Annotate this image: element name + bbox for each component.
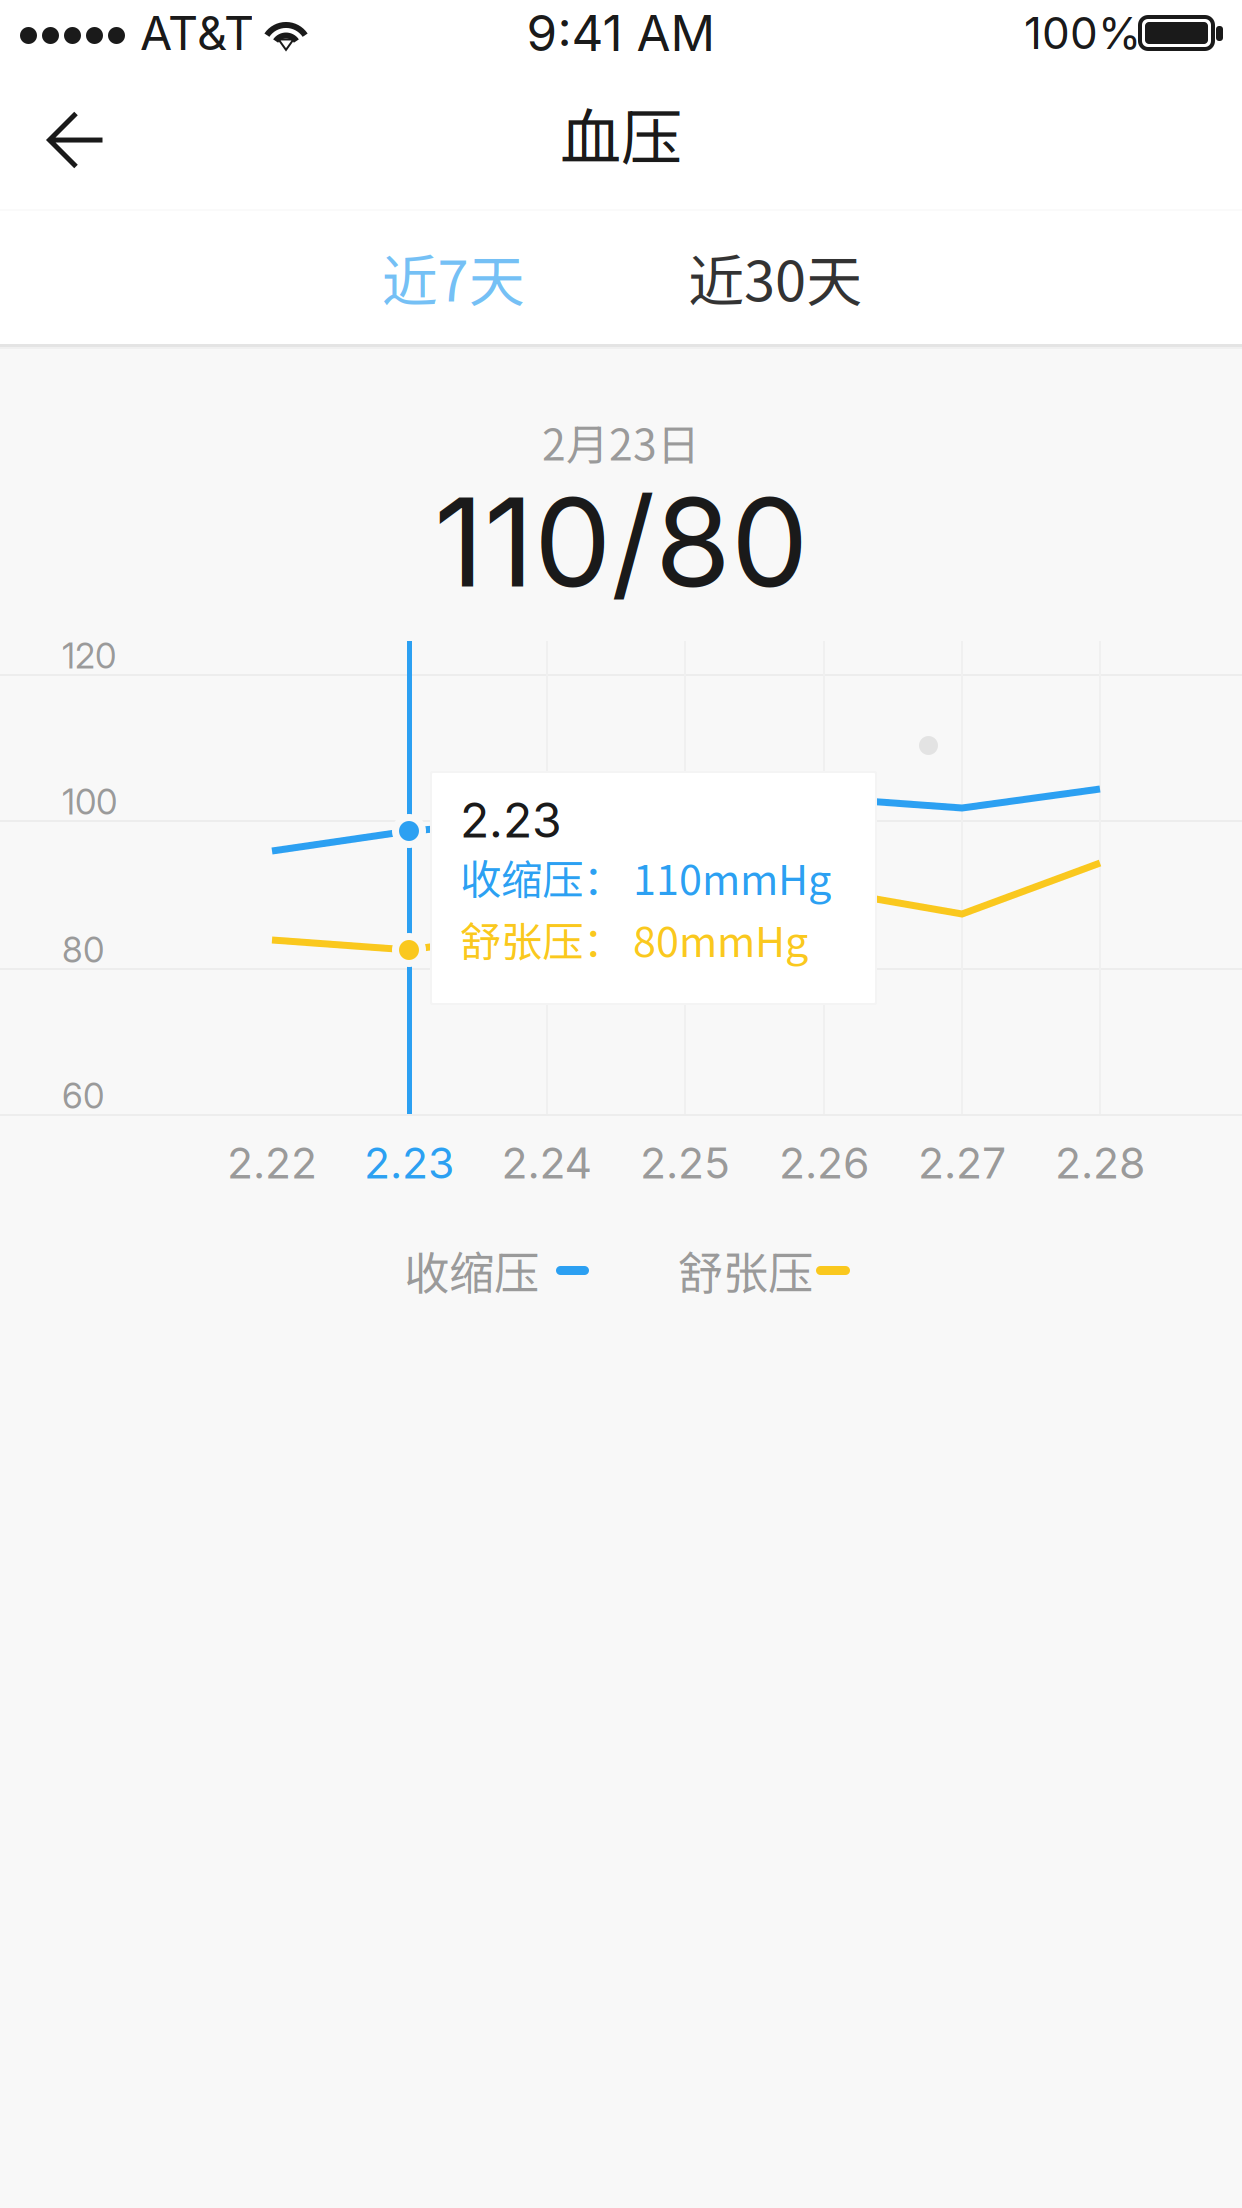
staticText: 80 xyxy=(62,929,104,971)
staticText: 收缩压 xyxy=(404,1237,539,1303)
staticText: 2.24 xyxy=(501,1137,592,1189)
staticText: 2月23日 xyxy=(542,411,700,473)
staticText: 9:41 AM xyxy=(526,3,715,63)
staticText: 110/80 xyxy=(434,468,808,616)
staticText: 2.26 xyxy=(779,1137,869,1189)
staticText: 2.23 xyxy=(460,791,562,849)
staticText: 2.28 xyxy=(1055,1137,1145,1189)
staticText: 120 xyxy=(62,635,116,677)
button[interactable]: 近7天 xyxy=(293,212,613,342)
staticText: 近30天 xyxy=(688,236,862,318)
staticText: AT&T xyxy=(140,5,254,61)
button[interactable]: 近30天 xyxy=(615,212,935,342)
staticText: 100% xyxy=(1024,6,1141,60)
staticText: 100 xyxy=(62,781,117,823)
staticText: 2.23 xyxy=(364,1137,454,1189)
staticText: 舒张压 xyxy=(678,1237,813,1303)
staticText: 2.25 xyxy=(640,1137,730,1189)
button[interactable]: 返回 xyxy=(24,88,128,192)
staticText: 2.22 xyxy=(227,1137,317,1189)
staticText: 近7天 xyxy=(381,236,524,318)
staticText: 60 xyxy=(62,1075,104,1117)
staticText: 舒张压： 80mmHg xyxy=(460,909,808,969)
staticText: 血压 xyxy=(560,89,682,177)
staticText: 2.27 xyxy=(918,1137,1006,1189)
staticText: 收缩压： 110mmHg xyxy=(460,847,831,907)
